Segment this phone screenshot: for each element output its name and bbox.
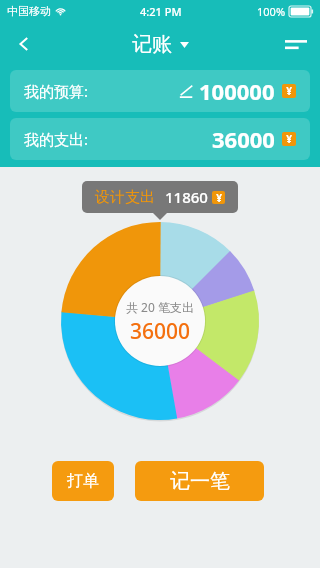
staticText: 100000	[199, 76, 275, 106]
staticText: 我的预算:	[24, 81, 89, 101]
button[interactable]: 我的支出:	[10, 118, 310, 160]
button[interactable]: Menu	[272, 22, 320, 66]
staticText: 共 20 笔支出	[126, 299, 194, 315]
staticText: 打单	[67, 471, 99, 491]
staticText: 36000	[212, 124, 275, 154]
staticText: 记账	[132, 32, 172, 57]
staticText: 记一笔	[170, 469, 230, 494]
staticText: 中国移动	[7, 4, 51, 18]
button[interactable]: 打单	[52, 461, 114, 501]
staticText: 设计支出	[95, 188, 155, 207]
staticText: ¥	[216, 191, 222, 204]
staticText: ¥	[286, 132, 292, 146]
button[interactable]: 记一笔	[135, 461, 264, 501]
button[interactable]: 记账	[132, 32, 189, 57]
staticText: ¥	[286, 84, 292, 98]
staticText: 我的支出:	[24, 129, 89, 149]
button[interactable]: 我的预算:	[10, 70, 310, 112]
button[interactable]: Back	[0, 22, 48, 66]
staticText: 36000	[130, 317, 191, 346]
button[interactable]: 设计支出	[82, 181, 238, 213]
staticText: 4:21 PM	[140, 4, 182, 19]
staticText: 11860	[165, 187, 208, 207]
staticText: 100%	[257, 4, 286, 19]
